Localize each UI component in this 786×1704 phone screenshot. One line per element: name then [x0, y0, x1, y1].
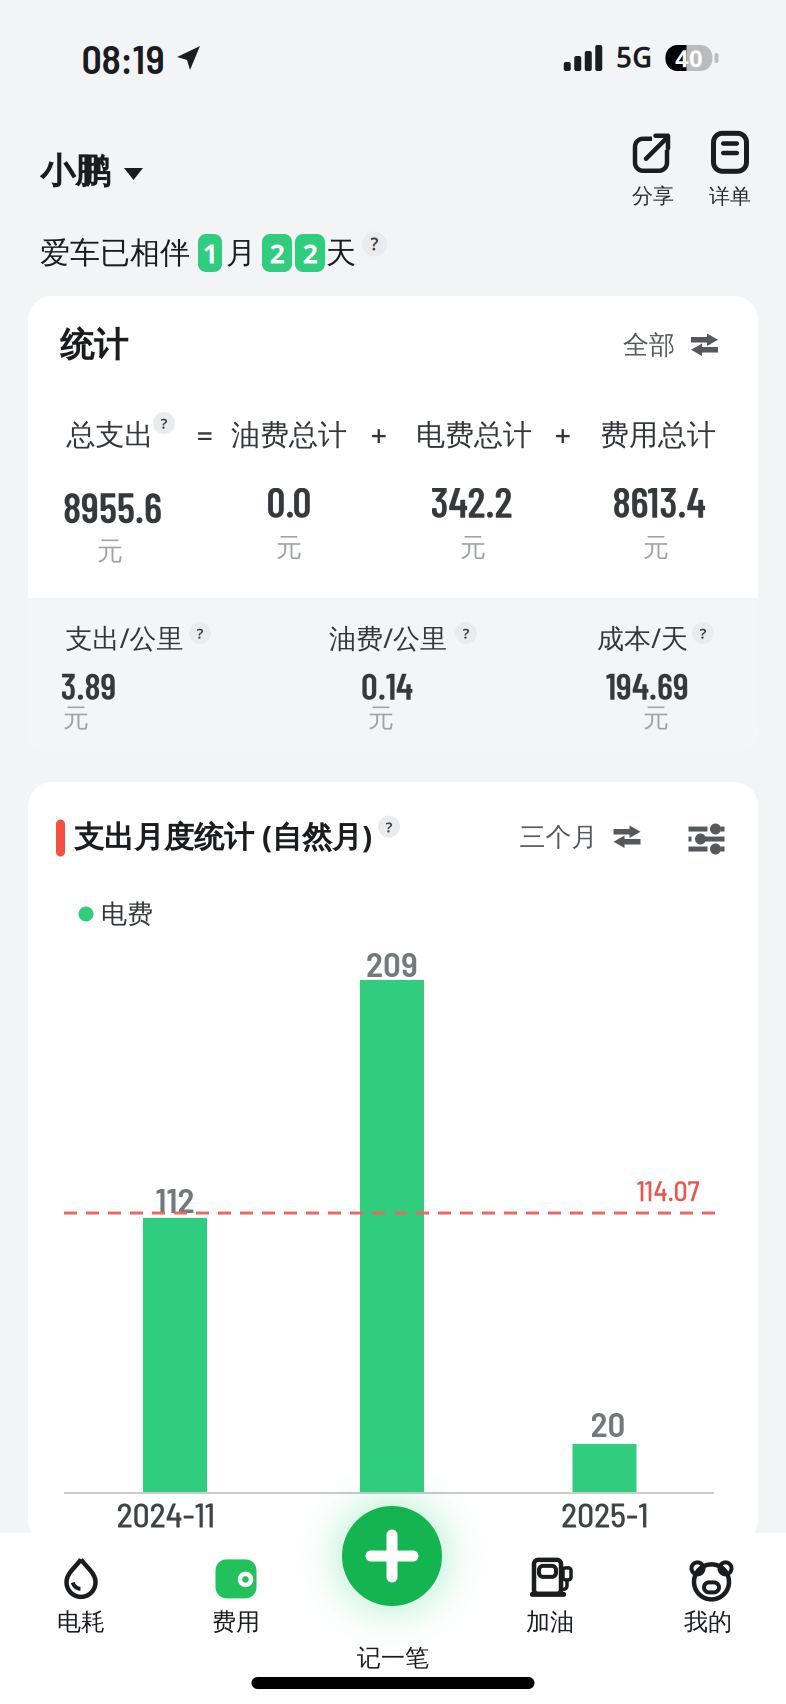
staticText: 2	[269, 235, 284, 271]
staticText: 费用	[212, 1607, 260, 1637]
staticText: 油费总计	[231, 417, 347, 453]
button[interactable]: ?	[153, 412, 175, 434]
staticText: =	[196, 415, 213, 455]
staticText: 8955.6	[63, 481, 162, 532]
staticText: 电耗	[57, 1607, 105, 1637]
staticText: 加油	[526, 1607, 574, 1637]
staticText: 总支出	[66, 417, 153, 453]
staticText: 8613.4	[612, 476, 705, 526]
button[interactable]: 我的	[684, 1557, 732, 1637]
staticText: 详单	[709, 183, 751, 210]
staticText: 112	[155, 1178, 194, 1220]
staticText: 元	[63, 702, 89, 734]
button[interactable]: ?	[455, 622, 477, 644]
staticText: 我的	[684, 1607, 732, 1637]
staticText: 114.07	[636, 1173, 699, 1207]
staticText: 5G	[616, 38, 652, 76]
staticText: 2	[302, 235, 317, 271]
staticText: 元	[643, 702, 669, 734]
staticText: 1	[202, 235, 217, 271]
button[interactable]: 三个月	[519, 821, 640, 853]
button[interactable]: 全部	[623, 329, 718, 361]
staticText: ?	[196, 623, 203, 643]
staticText: ?	[385, 816, 392, 837]
staticText: 全部	[623, 329, 675, 361]
button[interactable]: ?	[692, 622, 714, 644]
staticText: 元	[368, 702, 394, 734]
staticText: 记一笔	[357, 1643, 429, 1673]
button[interactable]: 加油	[526, 1557, 574, 1637]
button[interactable]: 分享	[632, 133, 674, 209]
staticText: +	[554, 415, 571, 455]
button[interactable]	[342, 1506, 442, 1606]
button[interactable]: ?	[189, 622, 211, 644]
button[interactable]: 电耗	[57, 1557, 105, 1637]
staticText: ?	[462, 623, 469, 643]
staticText: 2024-11	[116, 1494, 215, 1534]
button[interactable]: 费用	[212, 1557, 260, 1637]
staticText: ?	[699, 623, 706, 643]
staticText: ?	[370, 232, 378, 256]
staticText: 月	[226, 234, 256, 272]
button[interactable]: 详单	[709, 132, 751, 210]
staticText: 统计	[60, 324, 128, 366]
staticText: 2025-1	[561, 1494, 649, 1534]
staticText: 194.69	[606, 663, 689, 707]
staticText: +	[370, 415, 387, 455]
staticText: 天	[326, 234, 356, 272]
staticText: 0.0	[266, 476, 311, 526]
staticText: 209	[366, 942, 418, 984]
staticText: 08:19	[81, 34, 164, 82]
staticText: 元	[643, 531, 669, 564]
staticText: 成本/天	[597, 620, 688, 656]
staticText: 20	[590, 1402, 625, 1444]
staticText: 40	[675, 42, 703, 74]
staticText: 元	[276, 531, 302, 564]
staticText: 支出月度统计 (自然月)	[74, 816, 372, 856]
staticText: 元	[97, 535, 123, 567]
staticText: 元	[460, 531, 486, 564]
button[interactable]: ?	[362, 231, 387, 256]
staticText: 爱车已相伴	[40, 234, 190, 272]
staticText: 0.14	[361, 663, 413, 707]
staticText: 费用总计	[600, 417, 716, 453]
button[interactable]: 小鹏	[40, 149, 143, 193]
staticText: 支出/公里	[65, 620, 183, 656]
button[interactable]	[688, 824, 724, 854]
staticText: 342.2	[430, 476, 512, 526]
staticText: 电费	[101, 898, 153, 930]
staticText: 小鹏	[40, 149, 110, 193]
staticText: 分享	[632, 183, 674, 209]
staticText: ?	[160, 413, 167, 433]
staticText: 3.89	[60, 663, 116, 707]
staticText: 油费/公里	[329, 620, 447, 656]
staticText: 三个月	[519, 821, 597, 853]
staticText: 电费总计	[416, 417, 532, 453]
